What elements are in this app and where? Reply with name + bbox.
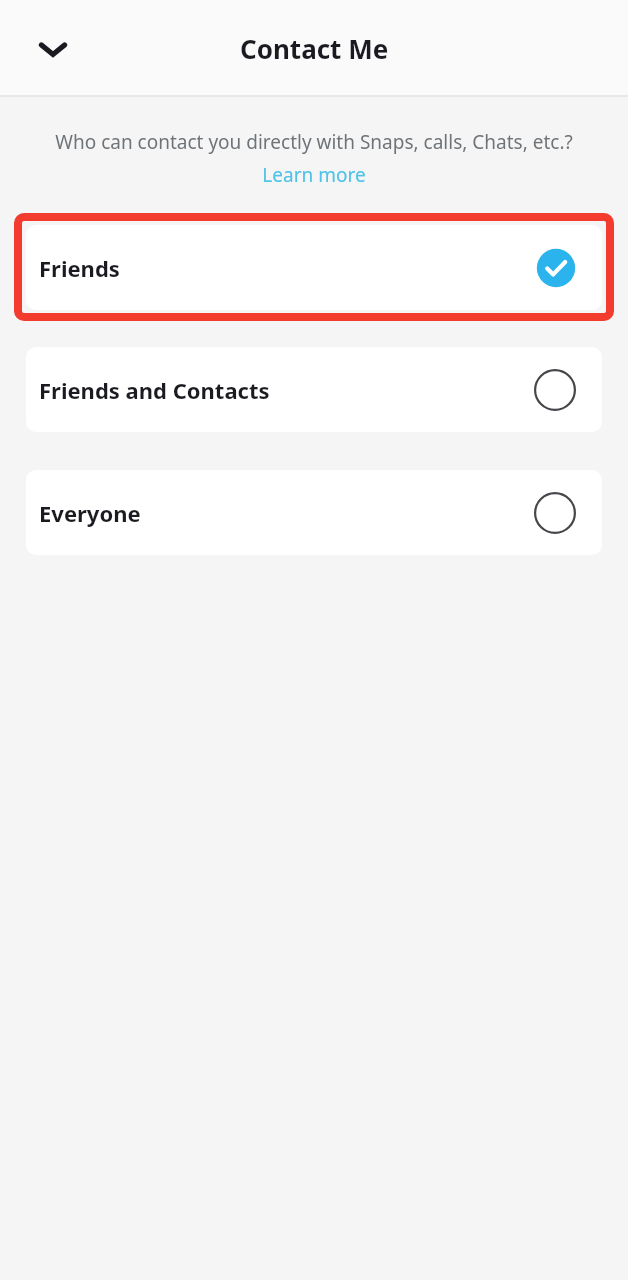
staticText: Friends and Contacts — [39, 375, 534, 405]
staticText: Who can contact you directly with Snaps,… — [24, 129, 604, 155]
button[interactable]: Friends — [26, 225, 602, 310]
button[interactable]: Learn more — [256, 160, 372, 190]
staticText: Contact Me — [240, 31, 389, 66]
button[interactable]: Everyone — [26, 470, 602, 555]
staticText: Friends — [39, 253, 536, 283]
button[interactable]: Collapse — [22, 18, 84, 80]
staticText: Everyone — [39, 498, 534, 528]
button[interactable]: Friends and Contacts — [26, 347, 602, 432]
